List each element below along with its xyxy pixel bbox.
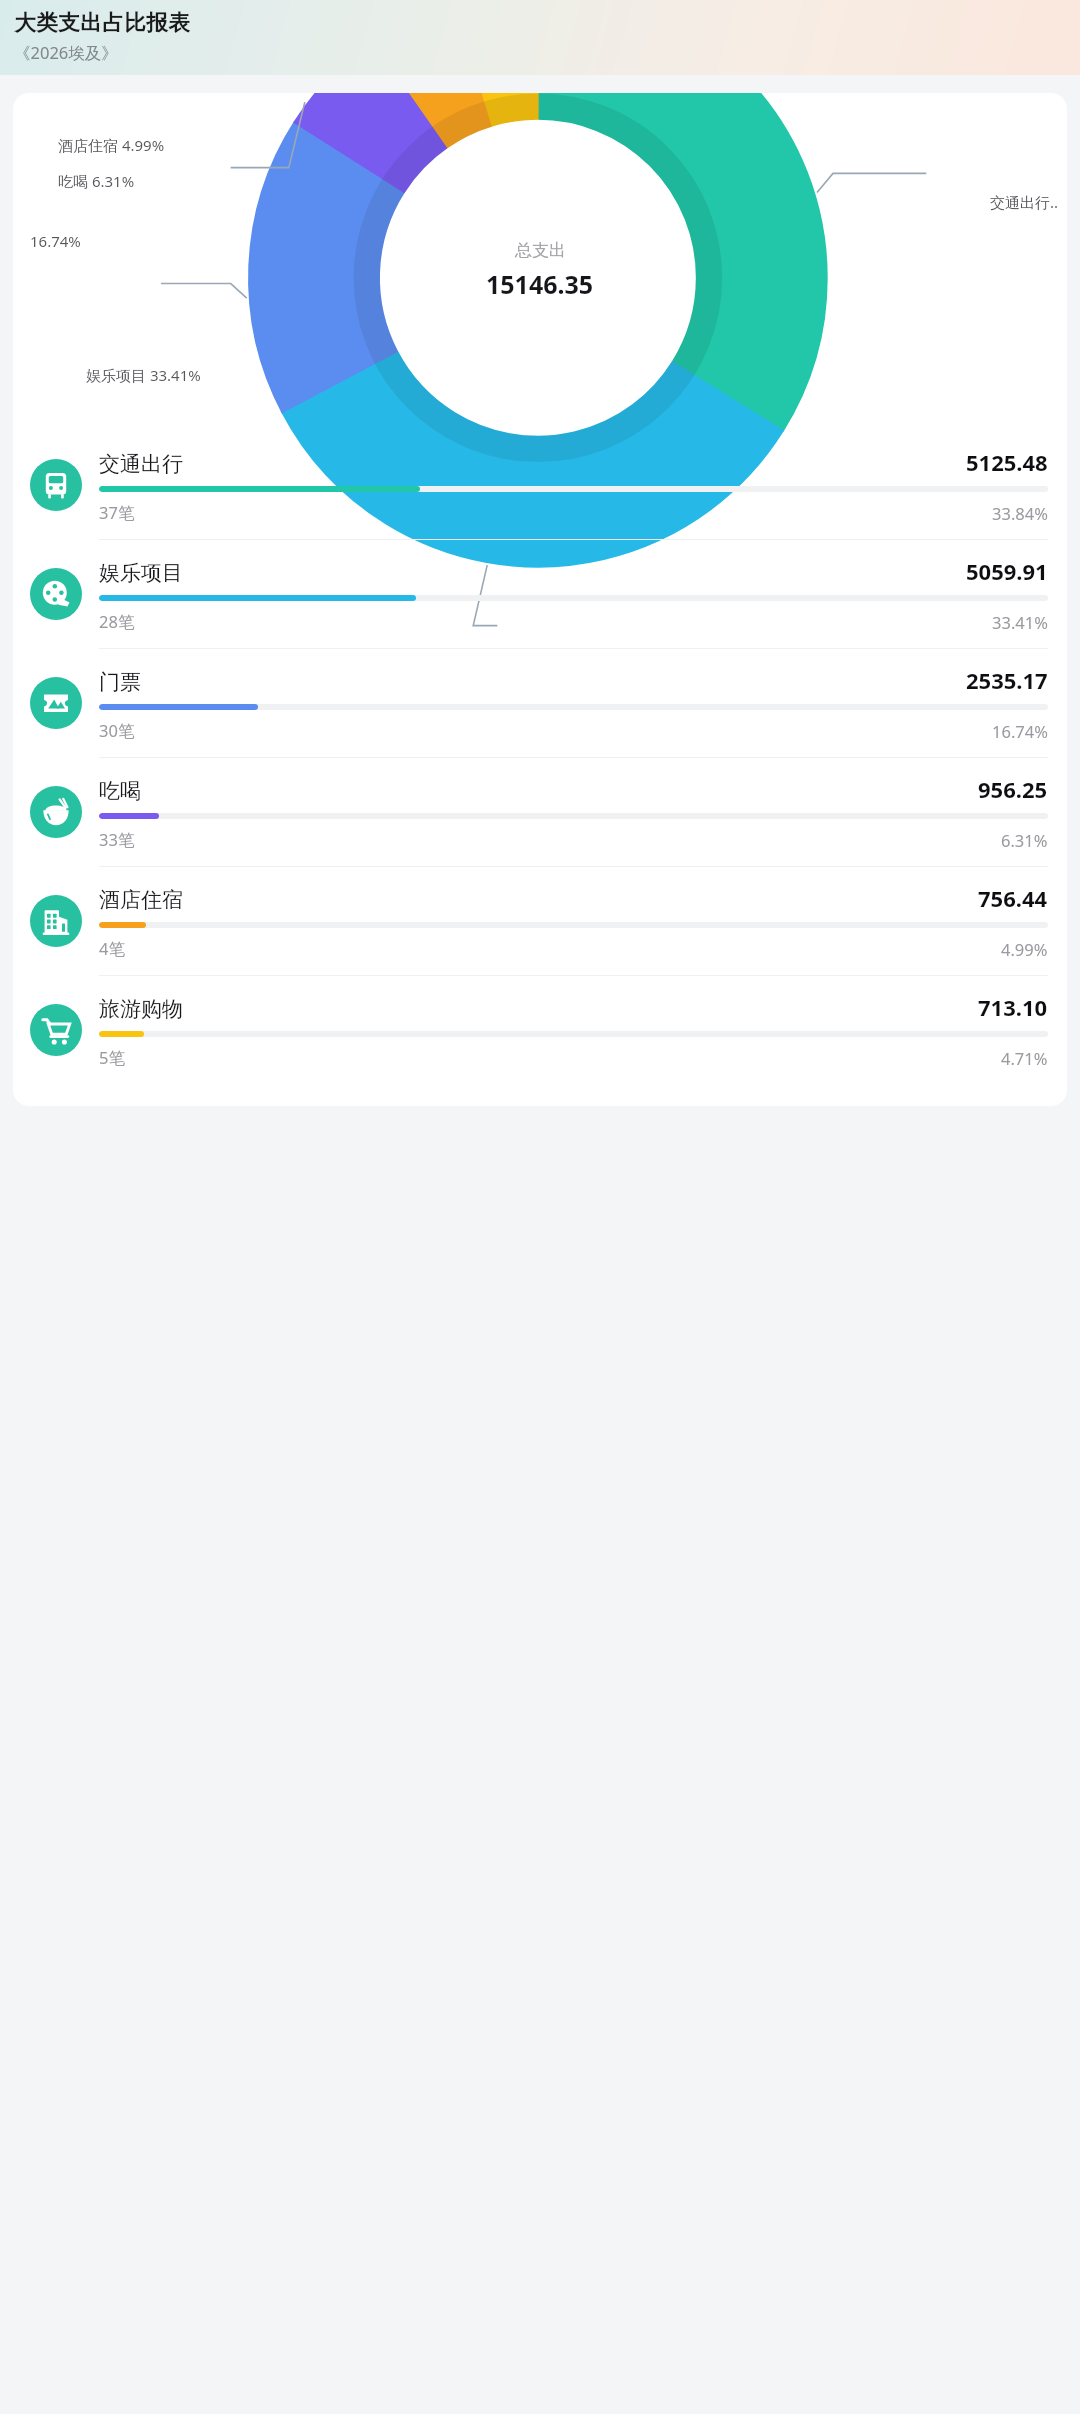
other: 吃喝 [30,786,82,838]
other: 交通出行 [30,459,82,511]
button[interactable]: 门票 [13,649,1067,758]
button[interactable]: 酒店住宿 [13,867,1067,976]
staticText: 2535.17 [966,665,1048,695]
staticText: 吃喝 [99,778,978,804]
staticText: 门票 [99,669,966,695]
staticText: 33.84% [992,502,1048,524]
button[interactable]: 娱乐项目 [13,540,1067,649]
staticText: 大类支出占比报表 [14,9,190,36]
staticText: 5笔 [99,1046,1001,1069]
staticText: 娱乐项目 [99,560,966,586]
other: 酒店住宿 [30,895,82,947]
staticText: 酒店住宿 [99,887,978,913]
button[interactable]: 旅游购物 [13,976,1067,1084]
staticText: 30笔 [99,719,992,742]
staticText: 5059.91 [966,556,1048,586]
other: 娱乐项目 [30,568,82,620]
staticText: 713.10 [978,992,1048,1022]
staticText: 4.99% [1001,938,1048,960]
staticText: 娱乐项目 33.41% [86,365,201,385]
other: 旅游购物 [30,1004,82,1056]
staticText: 旅游购物 [99,996,978,1022]
staticText: 33笔 [99,828,1001,851]
other: 门票 [30,677,82,729]
staticText: 15146.35 [486,267,594,301]
staticText: 交通出行 [99,451,966,477]
staticText: 33.41% [992,611,1048,633]
staticText: 吃喝 6.31% [58,171,135,191]
staticText: 16.74% [30,231,81,251]
staticText: 756.44 [978,883,1048,913]
staticText: 总支出 [515,240,566,261]
staticText: 6.31% [1001,829,1048,851]
staticText: 16.74% [992,720,1048,742]
button[interactable]: 吃喝 [13,758,1067,867]
staticText: 4笔 [99,937,1001,960]
staticText: 4.71% [1001,1047,1048,1069]
staticText: 交通出行.. [990,192,1059,212]
staticText: 5125.48 [966,447,1048,477]
staticText: 《2026埃及》 [14,41,118,64]
button[interactable]: 交通出行 [13,431,1067,540]
staticText: 酒店住宿 4.99% [58,135,165,155]
staticText: 28笔 [99,610,992,633]
staticText: 37笔 [99,501,992,524]
staticText: 956.25 [978,774,1048,804]
